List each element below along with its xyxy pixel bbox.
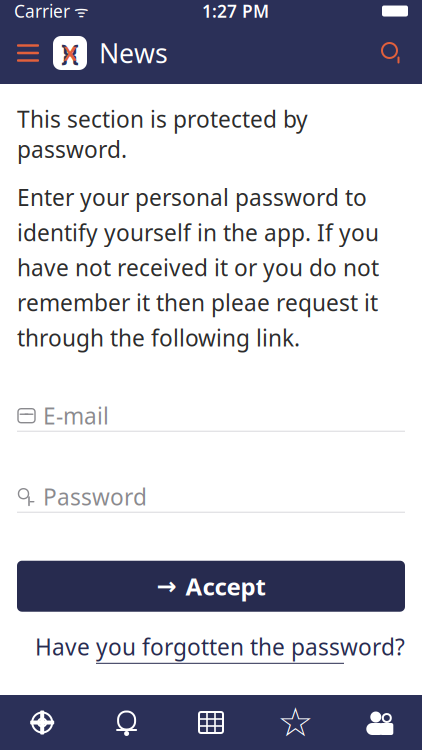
staticText: { xyxy=(70,38,79,68)
staticText: News xyxy=(99,35,168,71)
button[interactable]: Password xyxy=(17,432,405,513)
staticText: Enter your personal password to identify… xyxy=(17,182,379,353)
staticText: ☆ xyxy=(277,700,313,745)
button[interactable]: Settings xyxy=(0,695,84,750)
staticText: } xyxy=(61,38,70,68)
staticText: Have you forgotten the password? xyxy=(35,632,405,662)
staticText: ᯤ xyxy=(70,0,89,22)
staticText: Carrier xyxy=(14,0,70,22)
button[interactable]: Account xyxy=(338,695,422,750)
button[interactable]: Sections xyxy=(169,695,253,750)
button[interactable]: News xyxy=(47,29,168,77)
button[interactable]: Search xyxy=(371,32,413,74)
staticText: E-mail xyxy=(43,401,109,431)
button[interactable]: → xyxy=(17,561,405,612)
button[interactable]: E-mail xyxy=(17,353,405,432)
staticText: Accept xyxy=(185,570,265,602)
staticText: 1:27 PM xyxy=(202,0,269,22)
staticText: → xyxy=(156,573,176,600)
button[interactable]: Have you forgotten the password? xyxy=(17,612,405,664)
staticText: Password xyxy=(43,482,147,512)
button[interactable]: Menu xyxy=(9,32,47,74)
button[interactable]: Notifications xyxy=(84,695,169,750)
staticText: This section is protected by password. xyxy=(17,104,308,164)
staticText: X xyxy=(63,40,76,66)
button[interactable]: Favorites xyxy=(253,695,338,750)
